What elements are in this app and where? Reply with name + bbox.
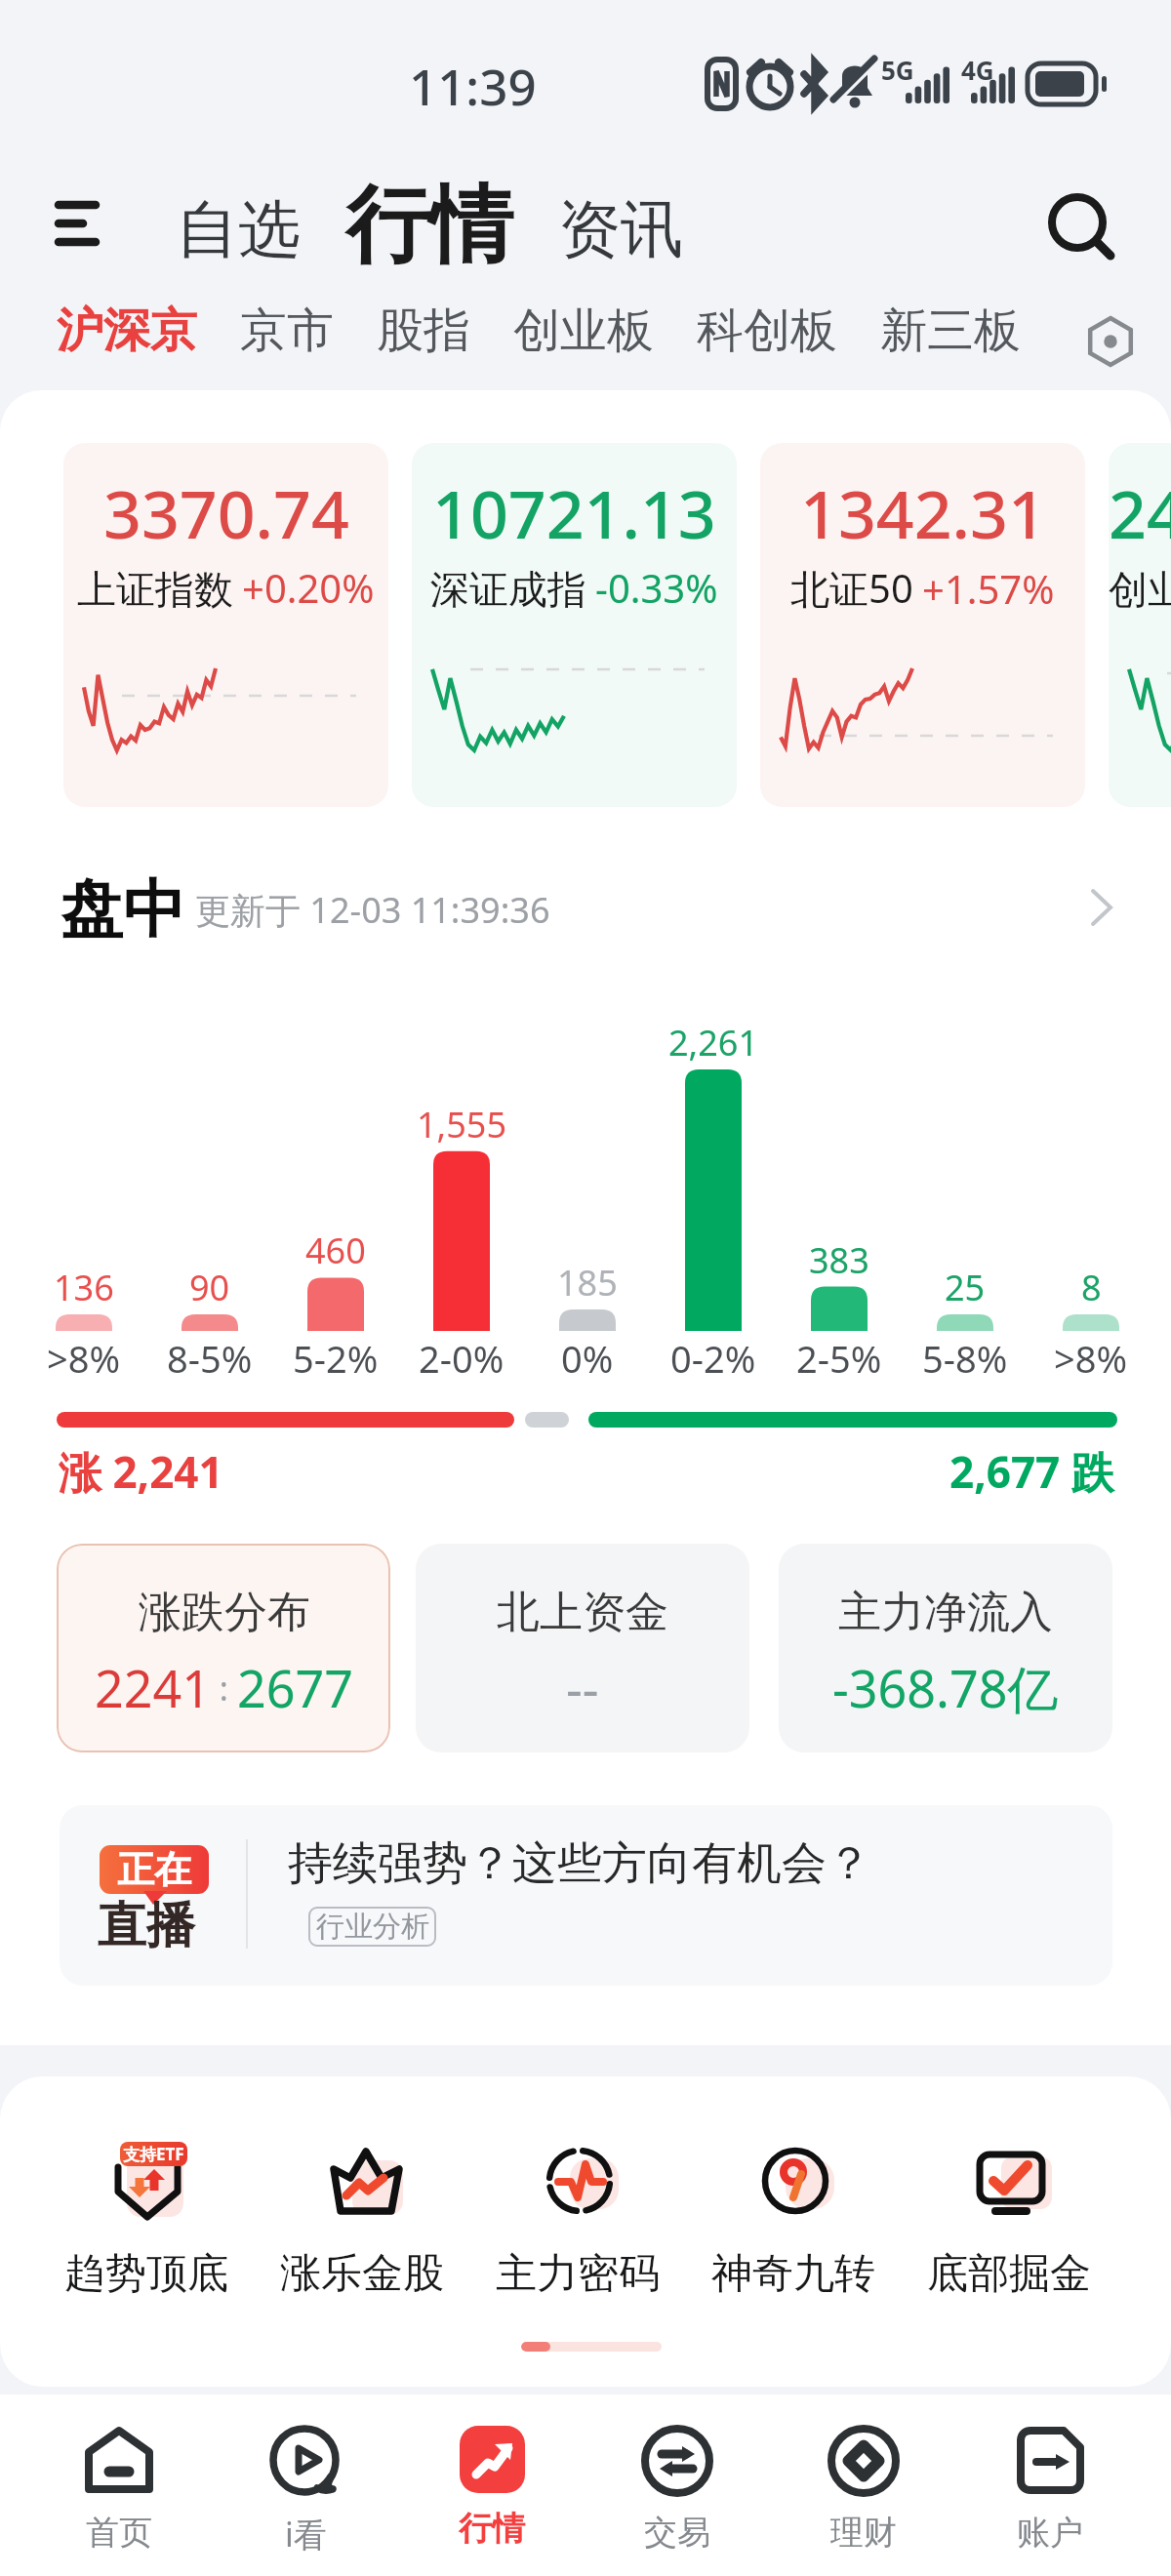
staticText: -0.33% — [595, 561, 718, 614]
staticText: 更新于 12-03 11:39:36 — [195, 886, 550, 934]
staticText: 账户 — [1017, 2512, 1083, 2554]
button[interactable]: 新三板 — [880, 290, 1021, 372]
staticText: 3370.74 — [103, 467, 349, 558]
staticText: 趋势顶底 — [64, 2248, 228, 2300]
staticText: 8 — [1081, 1264, 1102, 1311]
staticText: 行情 — [459, 2508, 525, 2550]
staticText: 25 — [945, 1264, 986, 1311]
staticText: 1,555 — [417, 1101, 507, 1148]
button[interactable]: 自选 — [176, 190, 301, 269]
staticText: 383 — [809, 1236, 869, 1284]
staticText: 主力净流入 — [838, 1586, 1053, 1639]
button[interactable]: 10721.13 — [412, 443, 737, 807]
staticText: 136 — [54, 1264, 114, 1311]
staticText: 8-5% — [167, 1333, 253, 1384]
staticText: 2,677 跌 — [949, 1442, 1114, 1501]
staticText: +0.20% — [242, 561, 375, 614]
staticText: 涨跌分布 — [139, 1586, 310, 1639]
button[interactable]: 涨乐金股 — [255, 2129, 469, 2300]
staticText: 新三板 — [880, 302, 1021, 360]
staticText: 理财 — [830, 2512, 897, 2554]
staticText: 京市 — [240, 302, 334, 360]
staticText: -368.78亿 — [832, 1653, 1059, 1722]
staticText: i看 — [285, 2512, 327, 2556]
staticText: 创业板 — [513, 302, 654, 360]
button[interactable]: 股指 — [377, 290, 470, 372]
staticText: 2-5% — [796, 1333, 882, 1384]
staticText: 行业分析 — [316, 1909, 429, 1945]
button[interactable]: 底部掘金 — [902, 2129, 1116, 2300]
staticText: 0% — [561, 1333, 614, 1384]
button[interactable]: 2456.88 — [1109, 443, 1171, 807]
button[interactable]: 行情 — [345, 173, 513, 278]
staticText: 185 — [557, 1259, 618, 1307]
staticText: 北证50 — [790, 561, 913, 615]
button[interactable]: 1342.31 — [760, 443, 1085, 807]
button[interactable]: 账户 — [957, 2426, 1143, 2554]
staticText: 涨 2,241 — [59, 1442, 223, 1501]
button[interactable]: Menu — [33, 180, 121, 267]
staticText: 11:39 — [409, 52, 537, 119]
staticText: 2677 — [237, 1653, 353, 1722]
button[interactable]: 支持ETF — [39, 2129, 254, 2300]
button[interactable]: 正在 — [60, 1805, 1112, 1986]
staticText: 北上资金 — [497, 1586, 668, 1639]
button[interactable]: 交易 — [585, 2426, 770, 2554]
staticText: -- — [566, 1653, 599, 1722]
staticText: 神奇九转 — [711, 2248, 875, 2300]
button[interactable]: 3370.74 — [63, 443, 388, 807]
staticText: 直播 — [98, 1895, 195, 1956]
staticText: 2241 — [95, 1653, 211, 1722]
staticText: 股指 — [377, 302, 470, 360]
button[interactable]: 科创板 — [697, 290, 837, 372]
staticText: 5-8% — [922, 1333, 1008, 1384]
staticText: >8% — [47, 1333, 121, 1384]
staticText: 主力密码 — [496, 2248, 660, 2300]
staticText: 0-2% — [670, 1333, 756, 1384]
staticText: : — [211, 1666, 237, 1711]
button[interactable]: 涨跌分布 — [57, 1544, 390, 1752]
button[interactable]: 理财 — [771, 2426, 956, 2554]
button[interactable]: 沪深京 — [57, 290, 197, 372]
button[interactable]: 主力密码 — [470, 2129, 685, 2300]
button[interactable]: 创业板 — [513, 290, 654, 372]
button[interactable]: 首页 — [26, 2426, 212, 2554]
staticText: 底部掘金 — [927, 2248, 1091, 2300]
staticText: 5G — [881, 53, 914, 87]
staticText: 正在 — [117, 1846, 191, 1893]
staticText: >8% — [1054, 1333, 1128, 1384]
staticText: 沪深京 — [57, 302, 197, 360]
button[interactable]: 盘中 — [0, 847, 1171, 956]
staticText: 深证成指 — [430, 565, 586, 614]
staticText: 2-0% — [419, 1333, 505, 1384]
button[interactable]: 行情 — [399, 2426, 585, 2550]
staticText: 盘中 — [61, 870, 185, 949]
staticText: 460 — [305, 1227, 366, 1274]
staticText: 5-2% — [293, 1333, 379, 1384]
staticText: 4G — [961, 53, 994, 87]
staticText: 1342.31 — [800, 467, 1046, 558]
button[interactable]: 资讯 — [558, 190, 683, 269]
staticText: 涨乐金股 — [280, 2248, 444, 2300]
staticText: 2456.88 — [1109, 467, 1171, 558]
button[interactable]: 京市 — [240, 290, 334, 372]
button[interactable]: 主力净流入 — [779, 1544, 1112, 1752]
staticText: 持续强势？这些方向有机会？ — [288, 1835, 871, 1892]
staticText: 支持ETF — [123, 2143, 184, 2165]
staticText: 交易 — [644, 2512, 710, 2554]
button[interactable]: Settings — [1073, 304, 1148, 379]
staticText: 10721.13 — [432, 467, 716, 558]
staticText: 90 — [189, 1264, 230, 1311]
button[interactable]: 北上资金 — [416, 1544, 749, 1752]
staticText: 科创板 — [697, 302, 837, 360]
staticText: +1.57% — [922, 562, 1055, 615]
staticText: 创业板指 — [1109, 565, 1171, 614]
staticText: 上证指数 — [77, 565, 233, 614]
button[interactable]: i看 — [213, 2426, 398, 2556]
button[interactable]: Search — [1034, 183, 1132, 281]
button[interactable]: 神奇九转 — [686, 2129, 901, 2300]
staticText: 首页 — [86, 2512, 152, 2554]
staticText: 2,261 — [668, 1019, 759, 1067]
